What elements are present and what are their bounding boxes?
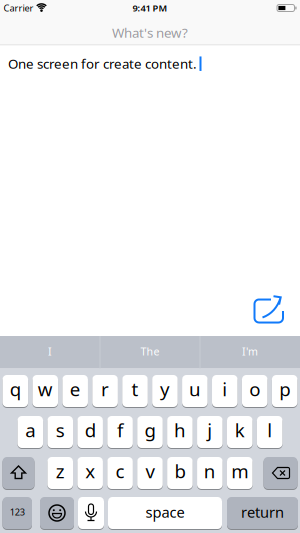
staticText: b <box>174 459 185 483</box>
button[interactable]: x <box>77 456 103 489</box>
staticText: p <box>279 377 290 401</box>
button[interactable]: v <box>137 456 163 489</box>
button[interactable]: Delete <box>263 456 297 489</box>
staticText: z <box>56 459 65 483</box>
staticText: x <box>85 459 95 483</box>
staticText: w <box>38 377 53 401</box>
button[interactable]: c <box>107 456 133 489</box>
staticText: g <box>144 418 155 442</box>
staticText: I'm <box>242 344 258 358</box>
button[interactable]: i <box>212 374 238 407</box>
staticText: t <box>131 377 138 401</box>
staticText: n <box>204 459 216 483</box>
staticText: q <box>10 377 21 401</box>
button[interactable]: g <box>137 415 163 448</box>
staticText: k <box>235 418 245 442</box>
button[interactable]: e <box>62 374 88 407</box>
staticText: j <box>207 418 212 442</box>
staticText: return <box>241 502 284 522</box>
staticText: s <box>56 418 65 442</box>
staticText: 9:41 PM <box>132 2 167 14</box>
button[interactable]: b <box>167 456 193 489</box>
staticText: c <box>116 459 125 483</box>
button[interactable]: s <box>47 415 73 448</box>
button[interactable]: Dictate <box>78 496 104 529</box>
button[interactable]: return <box>227 496 298 529</box>
staticText: The <box>140 344 159 358</box>
staticText: a <box>25 418 35 442</box>
button[interactable]: y <box>152 374 178 407</box>
staticText: l <box>267 418 272 442</box>
staticText: v <box>145 459 154 483</box>
button[interactable]: q <box>2 374 28 407</box>
button[interactable]: p <box>272 374 297 407</box>
button[interactable]: I'm <box>200 335 299 368</box>
button[interactable]: l <box>257 415 282 448</box>
staticText: d <box>85 418 96 442</box>
staticText: h <box>174 418 186 442</box>
button[interactable]: The <box>100 335 199 368</box>
button[interactable]: f <box>107 415 133 448</box>
staticText: 123 <box>10 506 25 518</box>
staticText: r <box>101 377 109 401</box>
button[interactable]: h <box>167 415 193 448</box>
button[interactable]: 123 <box>2 496 32 529</box>
staticText: i <box>222 377 227 401</box>
staticText: m <box>231 459 248 483</box>
button[interactable]: w <box>32 374 58 407</box>
staticText: u <box>189 377 201 401</box>
staticText: space <box>145 502 184 522</box>
staticText: o <box>249 377 260 401</box>
staticText: What's new? <box>112 24 188 41</box>
button[interactable]: space <box>108 496 222 529</box>
button[interactable]: z <box>47 456 73 489</box>
staticText: One screen for create content. <box>8 55 197 72</box>
button[interactable]: Shift <box>2 456 34 489</box>
button[interactable]: r <box>92 374 118 407</box>
button[interactable]: o <box>242 374 267 407</box>
button[interactable]: I <box>0 335 99 368</box>
button[interactable]: d <box>77 415 103 448</box>
button[interactable]: t <box>122 374 148 407</box>
staticText: y <box>160 377 170 401</box>
staticText: f <box>117 418 123 442</box>
button[interactable]: k <box>227 415 253 448</box>
button[interactable]: u <box>182 374 208 407</box>
button[interactable]: a <box>17 415 43 448</box>
staticText: e <box>70 377 81 401</box>
button[interactable]: Emoji <box>40 496 74 529</box>
button[interactable]: j <box>197 415 223 448</box>
button[interactable]: m <box>227 456 253 489</box>
staticText: I <box>48 344 52 358</box>
staticText: Carrier <box>3 2 33 14</box>
button[interactable]: Share <box>246 288 290 332</box>
button[interactable]: n <box>197 456 223 489</box>
